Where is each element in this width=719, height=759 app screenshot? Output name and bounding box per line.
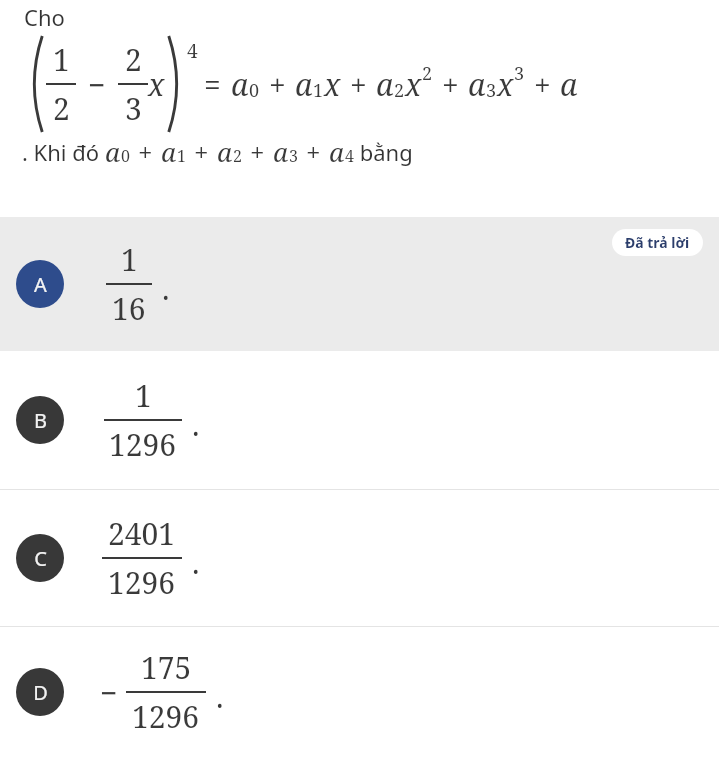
staticText: a: [329, 134, 345, 169]
staticText: 0: [249, 78, 260, 103]
button[interactable]: C: [0, 489, 719, 626]
staticText: 1: [177, 145, 186, 167]
staticText: +: [269, 64, 286, 105]
staticText: +: [534, 64, 551, 105]
staticText: a: [295, 64, 313, 105]
staticText: +: [194, 134, 209, 169]
staticText: Đã trả lời: [625, 233, 690, 252]
staticText: =: [204, 64, 221, 105]
staticText: 2401: [108, 513, 176, 554]
staticText: 2: [422, 61, 433, 86]
button[interactable]: A: [0, 217, 719, 351]
staticText: 3: [514, 61, 525, 86]
staticText: A: [34, 271, 47, 298]
staticText: +: [250, 134, 265, 169]
staticText: 1: [121, 239, 138, 280]
staticText: 16: [112, 288, 146, 329]
staticText: a: [273, 134, 289, 169]
staticText: .: [192, 542, 200, 583]
staticText: .: [192, 404, 200, 445]
staticText: x: [497, 64, 514, 105]
staticText: 2: [394, 78, 405, 103]
staticText: −: [88, 64, 106, 105]
staticText: 3: [125, 88, 142, 129]
staticText: a: [376, 64, 394, 105]
staticText: 1: [313, 78, 324, 103]
staticText: 3: [289, 145, 298, 167]
staticText: 1296: [132, 696, 200, 737]
staticText: 3: [486, 78, 497, 103]
staticText: B: [34, 407, 47, 434]
button[interactable]: B: [0, 351, 719, 489]
staticText: −: [100, 672, 118, 713]
staticText: +: [138, 134, 153, 169]
staticText: . Khi đó: [22, 137, 105, 167]
staticText: 1: [53, 39, 70, 80]
staticText: a: [560, 64, 578, 105]
staticText: a: [161, 134, 177, 169]
staticText: x: [405, 64, 422, 105]
staticText: 1: [135, 375, 152, 416]
staticText: .: [216, 676, 224, 717]
staticText: D: [33, 679, 48, 706]
staticText: x: [324, 64, 341, 105]
staticText: .: [162, 268, 170, 309]
staticText: a: [468, 64, 486, 105]
staticText: +: [442, 64, 459, 105]
staticText: +: [350, 64, 367, 105]
staticText: 2: [125, 39, 142, 80]
staticText: 2: [233, 145, 242, 167]
staticText: C: [34, 545, 47, 572]
staticText: 2: [53, 88, 70, 129]
staticText: 4: [187, 38, 198, 64]
staticText: a: [231, 64, 249, 105]
button[interactable]: D: [0, 626, 719, 757]
staticText: 4: [345, 145, 354, 167]
staticText: 1296: [108, 562, 176, 603]
staticText: x: [148, 64, 165, 105]
staticText: bằng: [354, 137, 413, 167]
staticText: a: [217, 134, 233, 169]
staticText: Cho: [24, 2, 65, 32]
staticText: 1296: [109, 424, 177, 465]
staticText: 175: [141, 647, 192, 688]
staticText: 0: [121, 145, 130, 167]
staticText: +: [306, 134, 321, 169]
staticText: a: [105, 134, 121, 169]
